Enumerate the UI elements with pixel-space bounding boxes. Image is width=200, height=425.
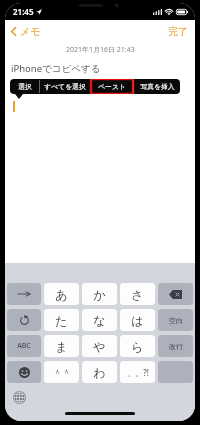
button[interactable]: ら — [120, 335, 155, 357]
button[interactable]: Switch keyboard — [11, 389, 27, 405]
staticText: すべてを選択 — [44, 82, 86, 91]
staticText: ま — [55, 339, 68, 354]
button[interactable]: さ — [120, 283, 155, 305]
staticText: 改行 — [169, 342, 183, 351]
staticText: あ — [55, 287, 68, 302]
button[interactable]: Undo — [7, 309, 41, 331]
button[interactable]: あ — [44, 283, 79, 305]
staticText: や — [93, 339, 106, 354]
staticText: 2021年1月16日 21:43 — [66, 45, 135, 55]
staticText: 写真を挿入 — [140, 82, 175, 91]
staticText: ABC — [17, 341, 31, 351]
button[interactable]: 空白 — [158, 309, 193, 331]
button[interactable]: ABC — [7, 335, 41, 357]
staticText: か — [93, 287, 106, 302]
staticText: ペースト — [98, 82, 126, 91]
button[interactable]: すべてを選択 — [40, 79, 90, 94]
button[interactable]: か — [82, 283, 117, 305]
button[interactable]: は — [120, 309, 155, 331]
button[interactable]: な — [82, 309, 117, 331]
staticText: わ — [93, 365, 106, 380]
staticText: 選択 — [18, 82, 32, 91]
button[interactable]: 改行 — [158, 335, 193, 357]
button[interactable]: Emoji — [7, 361, 41, 383]
button[interactable]: た — [44, 309, 79, 331]
button[interactable]: ま — [44, 335, 79, 357]
staticText: 、。?! — [127, 367, 149, 378]
staticText: ら — [131, 339, 144, 354]
staticText: 21:45 — [13, 6, 34, 17]
button[interactable]: わ — [82, 361, 117, 383]
staticText: 空白 — [169, 316, 183, 325]
staticText: な — [93, 313, 106, 328]
button[interactable]: や — [82, 335, 117, 357]
staticText: 完了 — [168, 25, 188, 38]
button[interactable]: ペースト — [91, 79, 133, 94]
button[interactable]: ＾＾ — [44, 361, 79, 383]
button[interactable]: 選択 — [10, 79, 39, 94]
staticText: メモ — [20, 25, 41, 38]
staticText: iPhoneでコピペする — [11, 62, 101, 75]
staticText: さ — [131, 287, 144, 302]
staticText: は — [131, 313, 144, 328]
button[interactable]: メモ — [8, 21, 44, 42]
staticText: ＾＾ — [53, 367, 71, 378]
staticText: た — [55, 313, 68, 328]
button[interactable]: 、。?! — [120, 361, 155, 383]
button[interactable] — [158, 361, 193, 383]
button[interactable]: 写真を挿入 — [134, 79, 180, 94]
button[interactable]: Delete — [158, 283, 193, 305]
button[interactable]: 完了 — [165, 21, 191, 42]
button[interactable]: Next — [7, 283, 41, 305]
